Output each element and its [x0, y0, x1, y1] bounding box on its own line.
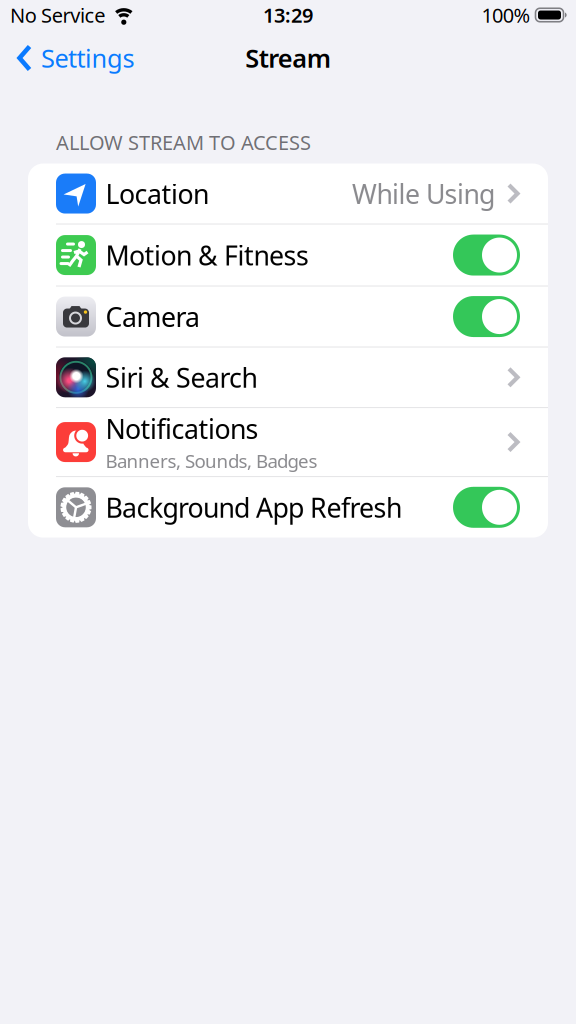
staticText: 100% [481, 2, 530, 28]
button[interactable]: Motion & Fitness [453, 235, 520, 276]
staticText: Stream [245, 41, 331, 75]
button[interactable]: Notifications [28, 408, 548, 476]
staticText: Camera [105, 299, 200, 334]
button[interactable]: Back to Settings [0, 41, 134, 75]
staticText: Siri & Search [105, 360, 257, 395]
staticText: While Using [352, 176, 495, 211]
staticText: Location [105, 176, 209, 211]
staticText: Background App Refresh [105, 490, 402, 525]
button[interactable]: Siri & Search [28, 348, 548, 407]
button[interactable]: Location [28, 164, 548, 224]
staticText: Settings [41, 41, 134, 75]
button[interactable]: Camera [453, 296, 520, 337]
staticText: Motion & Fitness [105, 237, 309, 273]
staticText: Notifications [105, 411, 258, 446]
staticText: Banners, Sounds, Badges [105, 448, 317, 473]
button[interactable]: Background App Refresh [453, 487, 520, 528]
staticText: ALLOW STREAM TO ACCESS [56, 129, 311, 156]
staticText: 13:29 [263, 2, 313, 28]
staticText: No Service [10, 2, 105, 28]
